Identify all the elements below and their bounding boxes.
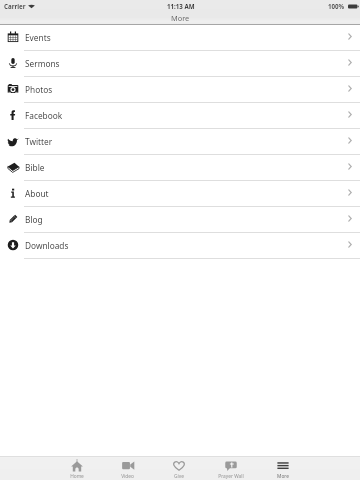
- staticText: Blog: [25, 214, 43, 225]
- staticText: Photos: [25, 84, 53, 95]
- staticText: More: [277, 473, 289, 480]
- staticText: Give: [174, 473, 184, 480]
- button[interactable]: About: [0, 181, 360, 207]
- staticText: 11:13 AM: [167, 2, 195, 10]
- button[interactable]: Video: [102, 459, 153, 480]
- staticText: Downloads: [25, 240, 69, 251]
- button[interactable]: Twitter: [0, 129, 360, 155]
- staticText: Carrier: [4, 2, 26, 10]
- button[interactable]: Bible: [0, 155, 360, 181]
- staticText: Home: [70, 473, 84, 480]
- button[interactable]: Sermons: [0, 51, 360, 77]
- button[interactable]: Events: [0, 25, 360, 51]
- staticText: More: [171, 13, 190, 23]
- staticText: Prayer Wall: [218, 473, 244, 480]
- button[interactable]: Photos: [0, 77, 360, 103]
- staticText: Twitter: [25, 136, 53, 147]
- button[interactable]: Give: [153, 459, 205, 480]
- button[interactable]: Facebook: [0, 103, 360, 129]
- button[interactable]: Blog: [0, 207, 360, 233]
- staticText: Sermons: [25, 58, 60, 69]
- button[interactable]: More: [257, 459, 309, 480]
- button[interactable]: Home: [51, 459, 102, 480]
- staticText: Events: [25, 32, 51, 43]
- button[interactable]: Downloads: [0, 233, 360, 259]
- staticText: Facebook: [25, 110, 63, 121]
- button[interactable]: Prayer Wall: [205, 459, 257, 480]
- staticText: Video: [121, 473, 134, 480]
- staticText: Bible: [25, 162, 45, 173]
- staticText: About: [25, 188, 49, 199]
- staticText: 100%: [328, 2, 345, 10]
